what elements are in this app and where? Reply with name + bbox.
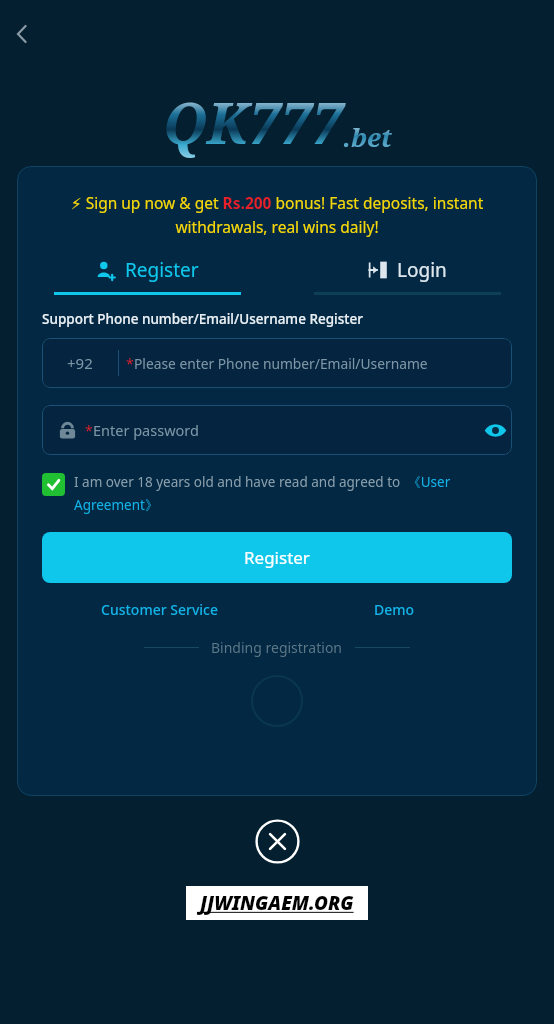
staticText: I am over 18 years old and have read and… (74, 473, 512, 514)
button[interactable]: Customer Service (96, 595, 223, 624)
button[interactable]: +92 (42, 338, 512, 388)
button[interactable]: Show password (478, 413, 512, 447)
button[interactable]: Demo (369, 595, 420, 624)
staticText: Support Phone number/Email/Username Regi… (42, 310, 363, 328)
staticText: * (126, 354, 134, 373)
button[interactable]: Register (17, 257, 277, 295)
staticText: Enter password (93, 420, 199, 440)
staticText: ⚡ Sign up now & get Rs.200 bonus! Fast d… (39, 192, 515, 237)
staticText: JJWINGAEM.ORG (200, 890, 354, 916)
staticText: Binding registration (211, 638, 343, 657)
staticText: Register (244, 546, 310, 569)
staticText: * (85, 421, 93, 440)
staticText: +92 (67, 353, 93, 373)
button[interactable]: * (42, 405, 512, 455)
staticText: Login (397, 257, 447, 283)
button[interactable]: Register (42, 532, 512, 583)
button[interactable]: Close (254, 818, 300, 864)
staticText: .bet (343, 119, 392, 154)
button[interactable]: Login (277, 257, 537, 295)
staticText: Demo (374, 600, 415, 619)
staticText: Customer Service (101, 600, 218, 619)
staticText: Please enter Phone number/Email/Username (134, 354, 428, 373)
staticText: QK777 (163, 84, 343, 160)
button[interactable]: Back (2, 14, 42, 54)
staticText: Register (125, 257, 199, 283)
button[interactable]: I am over 18 years old and have read and… (42, 473, 512, 514)
